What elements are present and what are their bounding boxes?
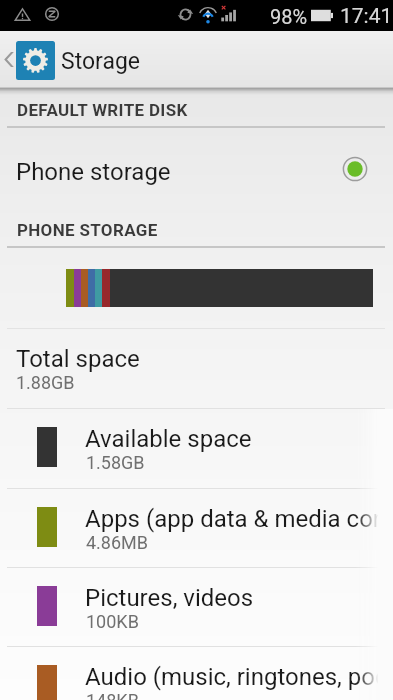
staticText: Phone storage — [16, 158, 171, 186]
staticText: Audio (music, ringtones, podcasts) — [85, 663, 392, 691]
button[interactable]: Apps (app data & media content) — [0, 489, 393, 568]
button[interactable]: Total space — [0, 329, 393, 408]
staticText: 98% — [270, 5, 308, 28]
staticText: 1.58GB — [86, 452, 145, 473]
staticText: Pictures, videos — [85, 584, 254, 612]
staticText: DEFAULT WRITE DISK — [17, 100, 188, 120]
staticText: Storage — [61, 48, 141, 75]
button[interactable]: Pictures, videos — [0, 568, 393, 647]
staticText: 4.86MB — [86, 532, 149, 553]
staticText: 100KB — [86, 611, 139, 632]
other: Phone storage selected — [342, 156, 368, 182]
button[interactable]: Audio (music, ringtones, podcasts) — [0, 647, 393, 700]
button[interactable]: Phone storage — [0, 128, 393, 212]
staticText: 17:41 — [340, 4, 393, 29]
staticText: Apps (app data & media content) — [85, 505, 392, 533]
staticText: PHONE STORAGE — [17, 220, 158, 240]
staticText: 1.88GB — [16, 372, 75, 393]
staticText: Available space — [85, 425, 252, 453]
other: Navigate up — [4, 51, 14, 68]
staticText: Total space — [16, 345, 140, 373]
button[interactable]: Navigate up — [0, 31, 393, 88]
staticText: 148KB — [86, 690, 139, 700]
button[interactable]: Available space — [0, 409, 393, 488]
